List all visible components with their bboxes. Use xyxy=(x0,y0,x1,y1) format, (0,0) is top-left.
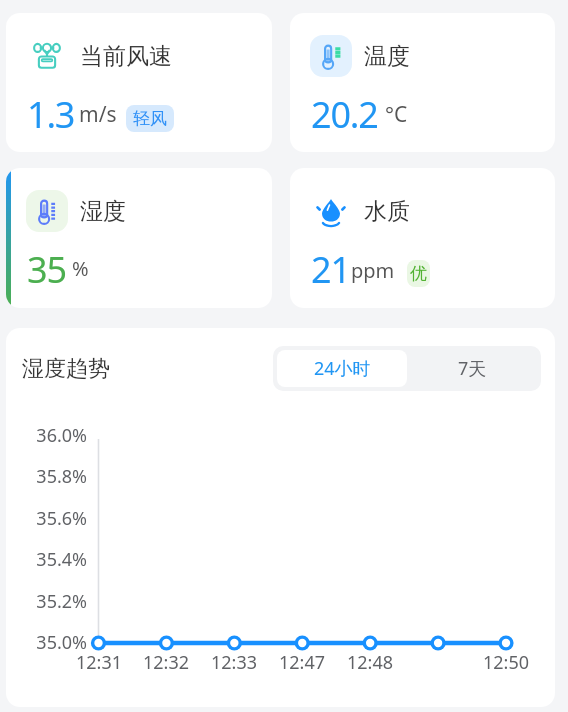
staticText: 优 xyxy=(410,263,427,284)
button[interactable]: 24小时 xyxy=(277,350,407,387)
staticText: 35.2% xyxy=(12,589,87,614)
other: Thermometer xyxy=(34,198,61,225)
staticText: 35.4% xyxy=(12,547,87,572)
button[interactable]: Wind speed xyxy=(6,13,272,152)
staticText: 35.6% xyxy=(12,506,87,531)
staticText: ppm xyxy=(351,257,395,284)
staticText: 湿度趋势 xyxy=(22,355,110,383)
other: Wind speed xyxy=(33,42,61,70)
staticText: m/s xyxy=(79,100,117,129)
staticText: 水质 xyxy=(364,197,410,226)
staticText: 温度 xyxy=(364,42,410,71)
staticText: 当前风速 xyxy=(80,42,172,71)
staticText: 12:50 xyxy=(466,650,546,675)
staticText: 7天 xyxy=(458,356,487,381)
staticText: 36.0% xyxy=(12,423,87,448)
other: Water quality xyxy=(316,196,346,226)
button[interactable]: Thermometer xyxy=(6,168,272,308)
staticText: 湿度 xyxy=(80,197,126,226)
staticText: 12:47 xyxy=(262,650,342,675)
staticText: 24小时 xyxy=(314,356,371,381)
staticText: 12:32 xyxy=(126,650,206,675)
staticText: °C xyxy=(385,100,408,129)
staticText: 35.8% xyxy=(12,464,87,489)
staticText: % xyxy=(72,255,89,282)
staticText: 20.2 xyxy=(311,90,378,139)
staticText: 12:31 xyxy=(59,650,139,675)
staticText: 轻风 xyxy=(133,108,167,129)
staticText: 35 xyxy=(27,245,66,294)
button[interactable]: 7天 xyxy=(407,350,537,387)
staticText: 1.3 xyxy=(27,90,75,139)
staticText: 12:33 xyxy=(194,650,274,675)
staticText: 12:48 xyxy=(330,650,410,675)
button[interactable]: Water quality xyxy=(290,168,555,308)
staticText: 35.0% xyxy=(12,630,87,655)
staticText: 21 xyxy=(311,245,350,294)
button[interactable]: Thermometer xyxy=(290,13,555,152)
other: Thermometer xyxy=(318,43,345,70)
